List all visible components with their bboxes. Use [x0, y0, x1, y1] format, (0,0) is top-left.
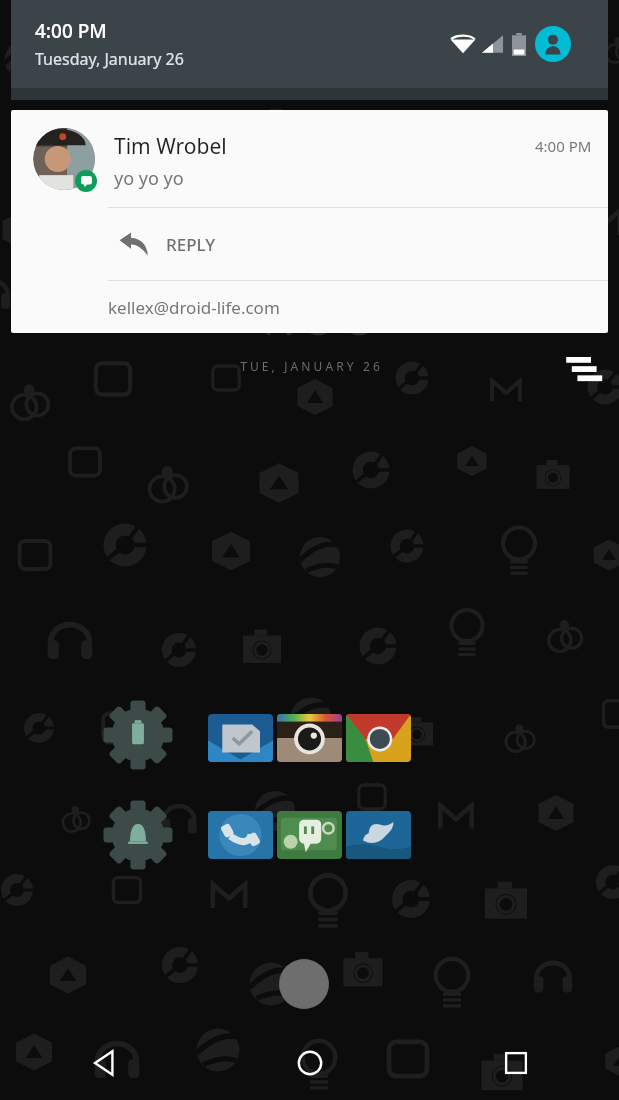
button[interactable]: Phone [208, 811, 273, 859]
button[interactable]: More notifications [563, 354, 607, 394]
staticText: kellex@droid-life.com [108, 296, 280, 319]
button[interactable]: Battery settings [105, 702, 171, 768]
button[interactable]: Sound settings [105, 802, 171, 868]
button[interactable]: kellex@droid-life.com [11, 281, 608, 333]
staticText: yo yo yo [114, 166, 184, 191]
button[interactable]: User profile [535, 26, 571, 62]
staticText: Tuesday, January 26 [35, 48, 184, 70]
button[interactable]: Home [207, 1026, 413, 1100]
staticText: Tim Wrobel [114, 132, 227, 161]
staticText: 4:00 PM [35, 18, 107, 44]
button[interactable]: Recents [413, 1026, 619, 1100]
button[interactable]: Chrome [346, 714, 411, 762]
button[interactable]: Tim Wrobel [11, 110, 608, 207]
button[interactable]: REPLY [11, 208, 608, 280]
button[interactable]: Hangouts [277, 811, 342, 859]
button[interactable]: All apps [279, 959, 329, 1009]
button[interactable]: Inbox [208, 714, 273, 762]
button[interactable]: Twitter [346, 811, 411, 859]
staticText: T U E , J A N U A R Y 2 6 [240, 358, 380, 374]
staticText: REPLY [166, 233, 216, 256]
staticText: 4:00 [239, 258, 380, 356]
staticText: 4:00 PM [535, 136, 592, 156]
button[interactable]: Back [0, 1026, 207, 1100]
button[interactable]: Instagram [277, 714, 342, 762]
